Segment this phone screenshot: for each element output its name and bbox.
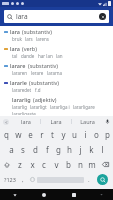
staticText: lara [10,45,20,52]
staticText: lara [21,118,31,125]
button[interactable]: t [47,127,58,142]
staticText: i [84,129,87,140]
staticText: z [18,159,22,170]
staticText: lararle [10,79,27,86]
button[interactable]: l [97,142,108,157]
staticText: h [67,144,72,155]
staticText: lars [25,36,33,42]
staticText: bruk [12,36,22,42]
button[interactable]: Search [4,10,109,23]
staticText: lararen [12,70,28,76]
button[interactable]: a [5,142,17,157]
staticText: (verb) [22,45,37,52]
staticText: w [15,129,22,140]
button[interactable]: lara [0,43,113,60]
staticText: lara [10,28,20,35]
button[interactable]: v [50,157,62,172]
button[interactable]: c [38,157,50,172]
staticText: lararna [47,70,63,76]
other: Search [7,14,13,20]
button[interactable]: Clear search [99,13,106,20]
staticText: (substantiv) [29,79,60,86]
staticText: (substantiv) [22,28,53,35]
button[interactable]: p [102,127,113,142]
staticText: lararlig [12,96,31,103]
button[interactable]: m [86,157,98,172]
button[interactable]: , [18,172,27,187]
button[interactable]: x [26,157,38,172]
staticText: b [66,159,71,170]
staticText: lararlig [12,104,27,110]
staticText: p [105,129,110,140]
button[interactable]: u [69,127,80,142]
button[interactable]: larare [0,60,113,77]
staticText: l [101,144,104,155]
staticText: k [89,144,94,155]
staticText: tal [12,53,18,59]
staticText: Laura [80,118,95,125]
button[interactable]: Search [97,174,108,185]
staticText: e [28,129,33,140]
button[interactable]: Lara [41,116,71,127]
button[interactable]: q [0,127,12,142]
button[interactable]: . [84,172,93,187]
staticText: Lara [50,118,62,125]
button[interactable]: z [14,157,26,172]
button[interactable]: s [17,142,29,157]
staticText: lan [56,53,63,59]
staticText: u [72,129,77,140]
staticText: s [21,144,25,155]
staticText: lararligare [73,104,95,110]
button[interactable]: d [29,142,41,157]
button[interactable]: Expand suggestions [0,116,11,127]
staticText: lara [16,12,28,21]
button[interactable]: Emoji [27,172,37,187]
button[interactable]: lararle [0,77,113,94]
button[interactable]: f [41,142,53,157]
staticText: t [51,129,54,140]
staticText: dande [21,53,35,59]
staticText: a [9,144,14,155]
staticText: (substantiv) [28,62,59,69]
button[interactable]: Hide keyboard [89,189,113,200]
button[interactable]: n [74,157,86,172]
button[interactable]: h [64,142,75,157]
staticText: . [88,176,90,184]
button[interactable]: lara [11,116,40,127]
button[interactable]: o [91,127,102,142]
button[interactable]: e [24,127,36,142]
staticText: c [42,159,46,170]
button[interactable]: b [62,157,74,172]
staticText: lararligaste [12,111,36,115]
button[interactable]: lararlig [0,94,113,116]
staticText: (adjektiv) [33,96,57,103]
button[interactable]: Home [29,189,59,200]
button[interactable]: Voice input [102,116,113,127]
button[interactable]: ?123 [2,172,18,187]
staticText: r [40,129,44,140]
button[interactable]: Shift [0,157,14,172]
button[interactable]: Back [0,189,29,200]
button[interactable]: j [75,142,86,157]
staticText: lerare [31,70,44,76]
button[interactable]: g [53,142,64,157]
button[interactable]: r [36,127,47,142]
staticText: , [22,176,24,184]
button[interactable]: Recent apps [59,189,89,200]
button[interactable]: y [58,127,69,142]
button[interactable]: Backspace [98,157,113,172]
staticText: larare [10,62,26,69]
button[interactable]: k [86,142,97,157]
staticText: lararliga i [50,104,70,110]
staticText: lararedet [12,87,32,93]
staticText: x [30,159,35,170]
staticText: larens [36,36,49,42]
button[interactable]: lara [0,26,113,43]
button[interactable]: i [80,127,91,142]
button[interactable]: w [12,127,24,142]
staticText: n [78,159,83,170]
button[interactable]: Laura [72,116,102,127]
staticText: d [33,144,38,155]
staticText: ?123 [4,176,16,183]
